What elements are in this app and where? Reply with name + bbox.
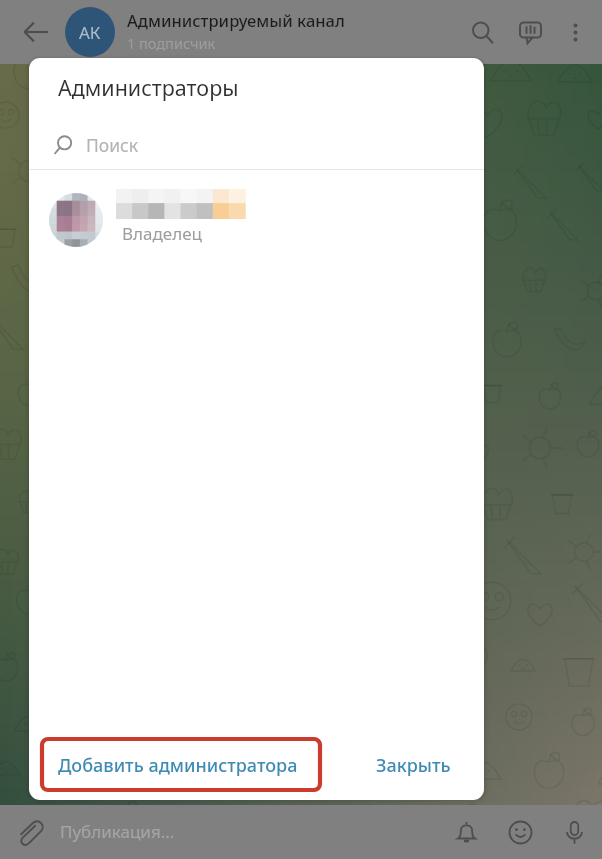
- staticText: Закрыть: [376, 753, 451, 778]
- staticText: Поиск: [86, 133, 139, 157]
- button[interactable]: More options: [552, 0, 598, 64]
- button[interactable]: Search: [459, 0, 505, 64]
- button[interactable]: Back: [10, 0, 62, 64]
- staticText: 1 подписчик: [127, 33, 216, 53]
- staticText: Администраторы: [58, 73, 239, 102]
- button[interactable]: Notifications: [440, 805, 492, 859]
- staticText: Публикация...: [60, 820, 175, 843]
- button[interactable]: Attach file: [1, 805, 57, 859]
- button[interactable]: Поиск: [29, 118, 484, 169]
- button[interactable]: Закрыть: [359, 738, 467, 792]
- staticText: Добавить администратора: [58, 753, 298, 778]
- button[interactable]: Добавить администратора: [40, 738, 322, 792]
- button[interactable]: Stories: [507, 0, 553, 64]
- staticText: Администрируемый канал: [127, 9, 345, 31]
- staticText: АК: [79, 21, 101, 44]
- button[interactable]: Voice message: [548, 805, 600, 859]
- button[interactable]: Emoji: [494, 805, 546, 859]
- button[interactable]: Владелец: [29, 170, 484, 248]
- staticText: Владелец: [122, 222, 202, 245]
